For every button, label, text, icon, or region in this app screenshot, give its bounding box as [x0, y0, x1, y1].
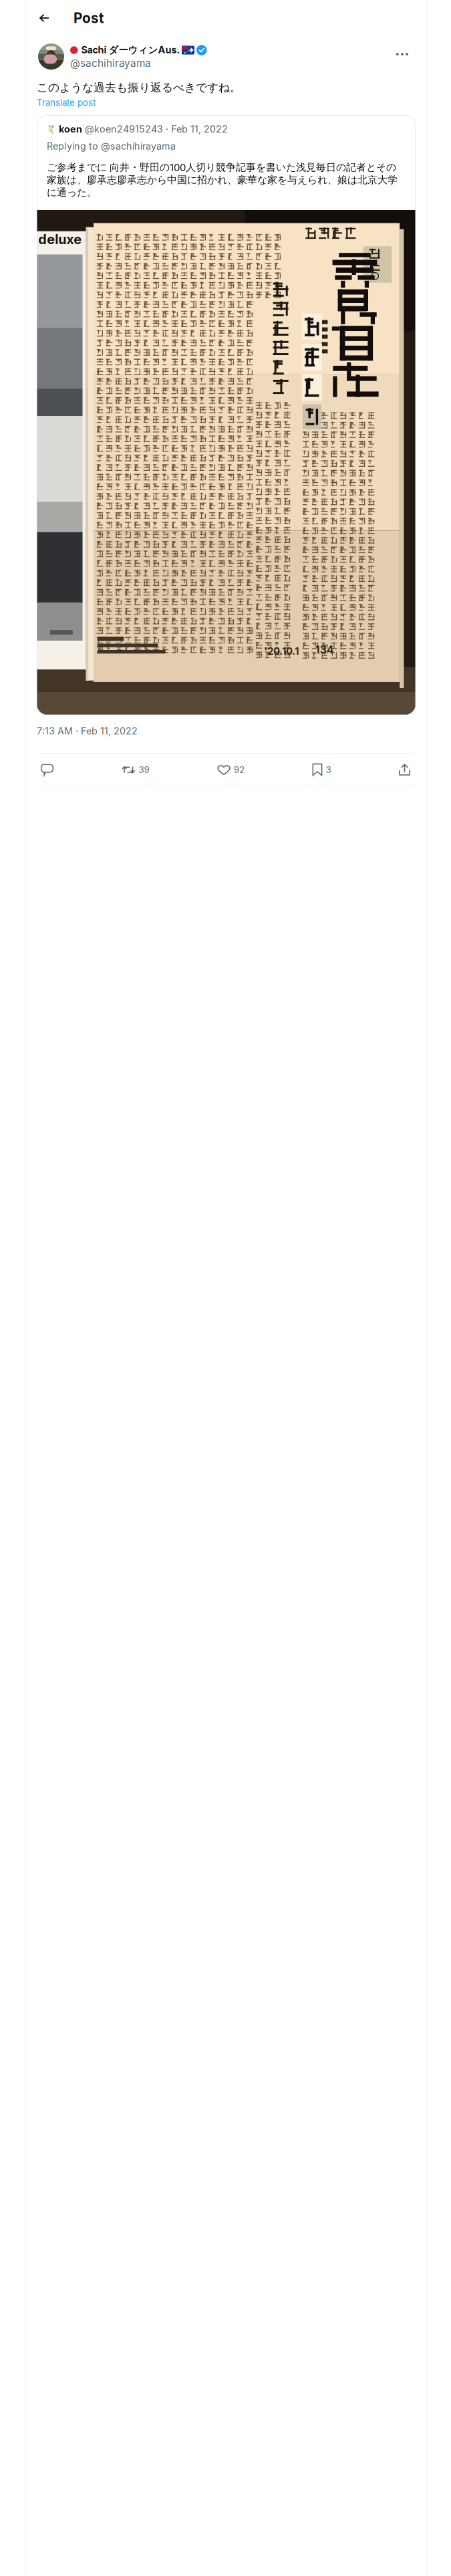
staticText: 39	[139, 764, 149, 775]
staticText: '20.10.1	[264, 645, 299, 657]
staticText: 7:13 AM · Feb 11, 2022	[37, 725, 138, 737]
staticText: 92	[234, 764, 244, 775]
button[interactable]: Bookmark	[312, 759, 331, 780]
staticText: 3	[326, 764, 331, 775]
button[interactable]: Translate post	[26, 96, 104, 109]
staticText: このような過去も振り返るべきですね。	[37, 81, 241, 95]
staticText: koen	[59, 123, 82, 135]
button[interactable]: Repost	[122, 759, 149, 780]
staticText: @koen24915243 · Feb 11, 2022	[85, 123, 228, 135]
button[interactable]: More	[392, 43, 413, 65]
staticText: Replying to @sachihirayama	[47, 140, 176, 152]
button[interactable]: Reply	[41, 759, 54, 780]
staticText: ご参考までに 向井・野田の100人切り競争記事を書いた浅見毎日の記者とその家族は…	[47, 161, 398, 199]
staticText: deluxe	[38, 231, 82, 247]
button[interactable]: Back	[26, 7, 62, 29]
staticText: Post	[73, 10, 104, 26]
staticText: Sachi ダーウィンAus.	[81, 44, 180, 56]
staticText: Translate post	[37, 97, 96, 108]
staticText: 134	[315, 643, 334, 656]
button[interactable]: Share	[399, 759, 410, 780]
button[interactable]: Like	[217, 759, 244, 780]
staticText: @sachihirayama	[70, 57, 151, 69]
